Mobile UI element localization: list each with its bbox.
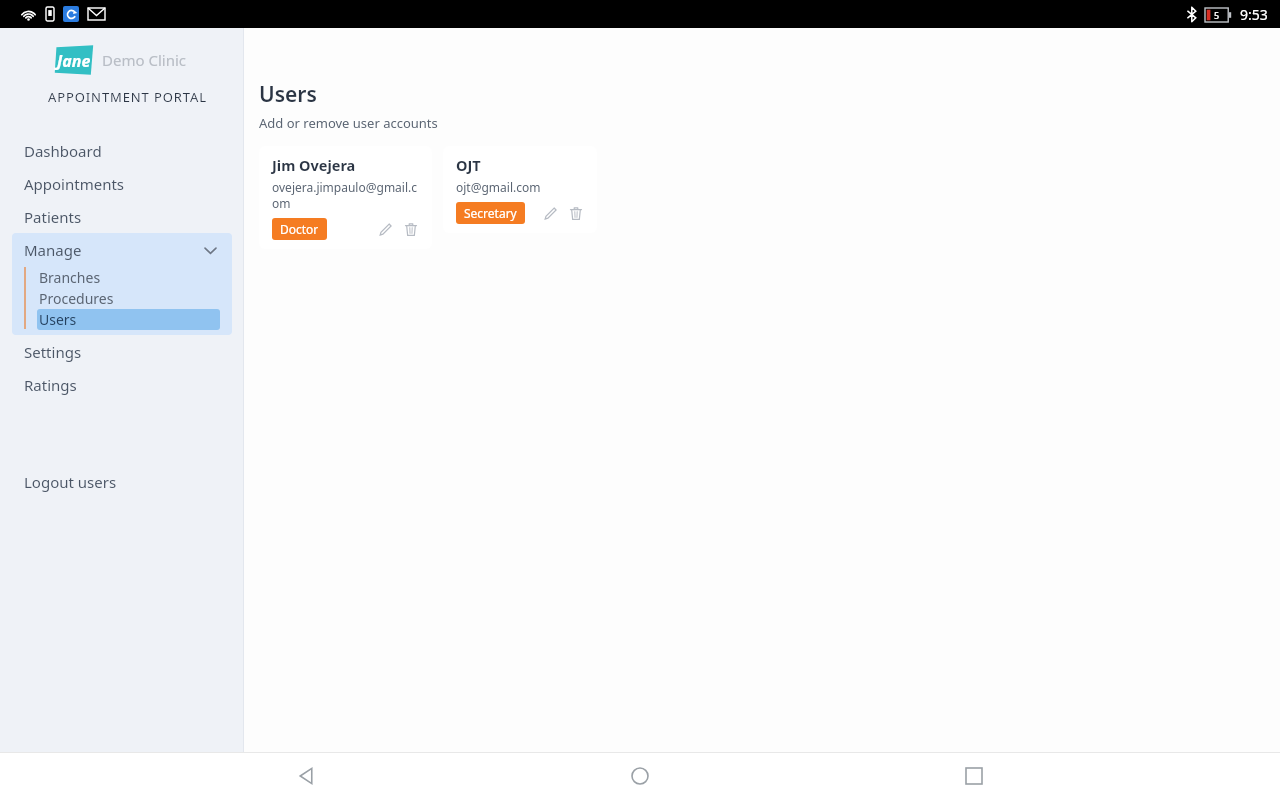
staticText: Procedures: [39, 289, 114, 308]
staticText: Jane: [57, 50, 91, 72]
button[interactable]: Jim Ovejera: [259, 146, 432, 249]
staticText: Logout users: [24, 472, 117, 492]
staticText: Users: [39, 310, 77, 329]
staticText: Jim Ovejera: [272, 155, 356, 175]
button[interactable]: Settings: [0, 335, 244, 368]
button[interactable]: Branches: [37, 267, 220, 288]
button[interactable]: Dashboard: [0, 134, 244, 167]
button[interactable]: Procedures: [37, 288, 220, 309]
button[interactable]: Recent apps: [946, 752, 1002, 800]
staticText: APPOINTMENT PORTAL: [48, 88, 244, 106]
button[interactable]: Appointments: [0, 167, 244, 200]
button[interactable]: Logout users: [0, 465, 244, 498]
staticText: Manage: [24, 240, 202, 260]
button[interactable]: Patients: [0, 200, 244, 233]
button[interactable]: Doctor: [272, 218, 327, 240]
button[interactable]: Home: [612, 752, 668, 800]
staticText: Users: [259, 80, 317, 109]
staticText: Dashboard: [24, 141, 102, 161]
button[interactable]: Back: [278, 752, 334, 800]
other: Collapse Manage: [202, 242, 218, 258]
button[interactable]: Delete user: [566, 203, 586, 223]
staticText: Patients: [24, 207, 82, 227]
staticText: 9:53: [1240, 5, 1268, 24]
button[interactable]: Users: [37, 309, 220, 330]
staticText: ovejera.jimpaulo@gmail.com: [272, 179, 421, 211]
button[interactable]: Delete user: [401, 219, 421, 239]
staticText: Appointments: [24, 174, 125, 194]
button[interactable]: Manage: [12, 233, 232, 267]
staticText: 5: [1214, 9, 1220, 21]
staticText: Ratings: [24, 375, 77, 395]
button[interactable]: Edit user: [540, 203, 560, 223]
staticText: Doctor: [280, 221, 319, 237]
staticText: Branches: [39, 268, 101, 287]
staticText: Settings: [24, 342, 82, 362]
button[interactable]: Secretary: [456, 202, 525, 224]
staticText: OJT: [456, 155, 481, 175]
button[interactable]: Ratings: [0, 368, 244, 401]
button[interactable]: OJT: [443, 146, 597, 233]
staticText: ojt@gmail.com: [456, 179, 541, 195]
staticText: Demo Clinic: [102, 50, 186, 70]
staticText: Add or remove user accounts: [259, 114, 438, 132]
staticText: Secretary: [464, 205, 517, 221]
button[interactable]: Edit user: [375, 219, 395, 239]
